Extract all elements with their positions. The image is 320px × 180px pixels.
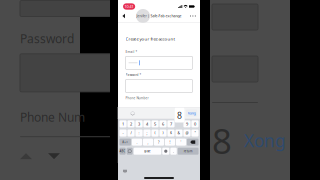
button[interactable]: 7 — [167, 120, 174, 127]
button[interactable]: Back — [120, 11, 127, 21]
staticText: & — [177, 131, 180, 135]
staticText: 0 — [194, 121, 196, 127]
staticText: Password * — [125, 73, 141, 77]
staticText: Phone Num — [20, 109, 85, 125]
staticText: Password — [20, 30, 77, 47]
staticText: ; — [146, 131, 147, 135]
staticText: space — [144, 149, 151, 153]
button[interactable]: ) — [159, 129, 166, 136]
staticText: ? — [158, 140, 160, 144]
button[interactable]: 2 — [127, 120, 134, 127]
button[interactable]: 0 — [191, 120, 198, 127]
staticText: 6 — [162, 121, 164, 127]
button[interactable]: More options — [188, 11, 198, 21]
staticText: 3 — [138, 121, 140, 127]
staticText: Phone Number — [125, 96, 148, 100]
button[interactable]: ( — [151, 129, 158, 136]
button[interactable]: : — [135, 129, 142, 136]
staticText: ' — [180, 140, 181, 144]
button[interactable]: Emoji — [127, 148, 133, 155]
button[interactable]: 1 — [119, 120, 127, 127]
button[interactable]: Hide keyboard — [121, 168, 129, 175]
button[interactable]: , — [143, 139, 153, 146]
staticText: ) — [162, 131, 163, 135]
staticText: 7 — [170, 121, 172, 127]
staticText: / — [130, 131, 131, 135]
staticText: . — [136, 140, 137, 144]
button[interactable]: 5 — [151, 120, 158, 127]
staticText: #+= — [122, 140, 128, 144]
staticText: 8 — [212, 117, 232, 164]
staticText: . — [173, 149, 174, 153]
button[interactable]: $ — [167, 129, 174, 136]
staticText: " — [194, 131, 195, 135]
button[interactable]: #+= — [119, 139, 131, 146]
button[interactable]: Delete — [187, 139, 198, 146]
button[interactable]: ' — [176, 139, 186, 146]
staticText: ( — [154, 131, 155, 135]
staticText: 9 — [186, 121, 188, 127]
button[interactable]: return — [178, 148, 199, 155]
button[interactable]: " — [191, 129, 198, 136]
staticText: 5 — [154, 121, 156, 127]
button[interactable]: 9 — [183, 120, 190, 127]
button[interactable]: . — [170, 148, 177, 155]
button[interactable]: Dictate — [162, 148, 169, 155]
staticText: return — [184, 149, 193, 153]
staticText: 1 — [122, 121, 124, 127]
button[interactable]: Previous or next field — [129, 109, 136, 117]
staticText: Jenifer | Safe-Fab exchange — [136, 14, 181, 18]
button[interactable]: ? — [154, 139, 164, 146]
staticText: 10:41 — [125, 4, 134, 9]
staticText: Create your free account — [125, 36, 175, 42]
button[interactable]: ABC — [119, 148, 126, 155]
button[interactable]: ! — [165, 139, 175, 146]
button[interactable]: - — [119, 129, 127, 136]
button[interactable]: . — [132, 139, 142, 146]
button[interactable]: 6 — [159, 120, 166, 127]
button[interactable]: & — [175, 129, 182, 136]
staticText: ABC — [119, 149, 125, 153]
button[interactable]: space — [134, 148, 161, 155]
button[interactable]: 3 — [135, 120, 142, 127]
button[interactable]: / — [127, 129, 134, 136]
staticText: 2 — [130, 121, 132, 127]
staticText: 4 — [146, 121, 148, 127]
staticText: : — [138, 131, 139, 135]
staticText: - — [122, 131, 123, 135]
button[interactable]: 4 — [143, 120, 150, 127]
staticText: Email * — [125, 50, 137, 54]
staticText: Xong — [187, 110, 195, 116]
staticText: Xong — [244, 129, 286, 152]
staticText: 8 — [177, 109, 182, 121]
staticText: @ — [185, 131, 188, 135]
button[interactable]: Xong — [186, 109, 197, 116]
button[interactable]: @ — [183, 129, 190, 136]
button[interactable]: ; — [143, 129, 150, 136]
staticText: $ — [170, 131, 172, 135]
